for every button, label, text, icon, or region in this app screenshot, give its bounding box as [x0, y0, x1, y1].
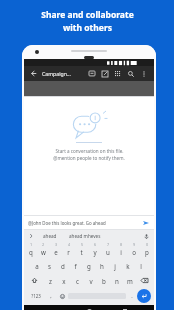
staticText: r [67, 248, 70, 256]
staticText: d [61, 262, 65, 270]
staticText: z [49, 277, 52, 285]
staticText: 6 [94, 243, 96, 247]
button[interactable]: Shift [25, 273, 43, 288]
button[interactable]: x [57, 273, 71, 288]
staticText: with others [63, 22, 112, 34]
staticText: p [145, 248, 149, 256]
button[interactable]: a [31, 258, 43, 273]
button[interactable]: Backspace [136, 273, 153, 288]
staticText: . [131, 292, 133, 299]
button[interactable]: h [95, 258, 108, 273]
button[interactable]: d [56, 258, 69, 273]
button[interactable]: Comment [85, 66, 98, 81]
button[interactable]: @John Doe this looks great. Go ahead [28, 216, 150, 229]
staticText: f [74, 262, 77, 270]
button[interactable]: k [121, 258, 134, 273]
button[interactable]: 0 [140, 242, 153, 258]
button[interactable]: 8 [114, 242, 127, 258]
staticText: 9 [133, 243, 135, 247]
staticText: , [50, 292, 52, 299]
staticText: t [80, 248, 83, 256]
button[interactable]: g [82, 258, 95, 273]
staticText: j [114, 262, 116, 270]
staticText: w [41, 248, 46, 256]
staticText: 3 [55, 243, 57, 247]
button[interactable]: Comma [45, 288, 56, 304]
staticText: i [120, 248, 122, 256]
button[interactable]: Search [124, 66, 137, 81]
staticText: 5 [81, 243, 83, 247]
button[interactable]: Expand suggestions [27, 232, 35, 240]
button[interactable]: Send [141, 218, 150, 227]
button[interactable]: 9 [127, 242, 140, 258]
button[interactable]: n [110, 273, 123, 288]
button[interactable]: z [43, 273, 57, 288]
staticText: m [127, 277, 133, 285]
staticText: Start a conversation on this file. [55, 148, 124, 154]
button[interactable]: 3 [49, 242, 62, 258]
staticText: s [48, 262, 51, 270]
staticText: e [54, 248, 58, 256]
staticText: y [93, 248, 97, 256]
button[interactable]: More options [137, 66, 150, 81]
button[interactable]: v [84, 273, 97, 288]
staticText: c [76, 277, 79, 285]
button[interactable]: l [134, 258, 147, 273]
staticText: o [132, 248, 136, 256]
button[interactable]: 5 [75, 242, 88, 258]
staticText: a [35, 262, 39, 270]
staticText: v [89, 277, 93, 285]
staticText: Share and collaborate [41, 9, 134, 21]
button[interactable]: 1 [25, 242, 37, 258]
button[interactable]: Campaign… [42, 70, 71, 77]
staticText: 8 [120, 243, 122, 247]
staticText: k [126, 262, 130, 270]
button[interactable]: f [69, 258, 82, 273]
button[interactable]: Back [28, 68, 39, 79]
button[interactable]: 6 [88, 242, 101, 258]
button[interactable]: 4 [62, 242, 75, 258]
button[interactable]: ?123 [27, 288, 45, 304]
staticText: g [87, 262, 91, 270]
button[interactable]: 2 [37, 242, 49, 258]
button[interactable]: 7 [101, 242, 114, 258]
staticText: 2 [42, 243, 44, 247]
staticText: 7 [107, 243, 109, 247]
button[interactable]: Voice input [142, 232, 151, 241]
staticText: ?123 [31, 293, 41, 299]
staticText: @mention people to notify them. [53, 155, 125, 161]
button[interactable]: s [43, 258, 56, 273]
staticText: x [62, 277, 66, 285]
button[interactable]: Recents [119, 305, 131, 310]
button[interactable]: c [71, 273, 84, 288]
staticText: u [106, 248, 110, 256]
button[interactable]: m [123, 273, 136, 288]
button[interactable]: Enter [137, 289, 151, 303]
button[interactable]: b [97, 273, 110, 288]
staticText: h [100, 262, 104, 270]
button[interactable]: Emoji [56, 288, 68, 304]
button[interactable]: Open in new [98, 66, 111, 81]
staticText: b [102, 277, 106, 285]
button[interactable]: ahead mheves [69, 233, 101, 239]
staticText: 0 [146, 243, 148, 247]
button[interactable]: j [108, 258, 121, 273]
button[interactable]: ahead [43, 233, 57, 239]
staticText: q [29, 248, 33, 256]
staticText: @John Doe this looks great. Go ahead [28, 220, 141, 226]
staticText: 4 [68, 243, 70, 247]
button[interactable]: Home [83, 305, 95, 310]
staticText: l [140, 262, 142, 270]
staticText: n [115, 277, 119, 285]
button[interactable]: Grid view [111, 66, 124, 81]
staticText: 1 [30, 243, 32, 247]
